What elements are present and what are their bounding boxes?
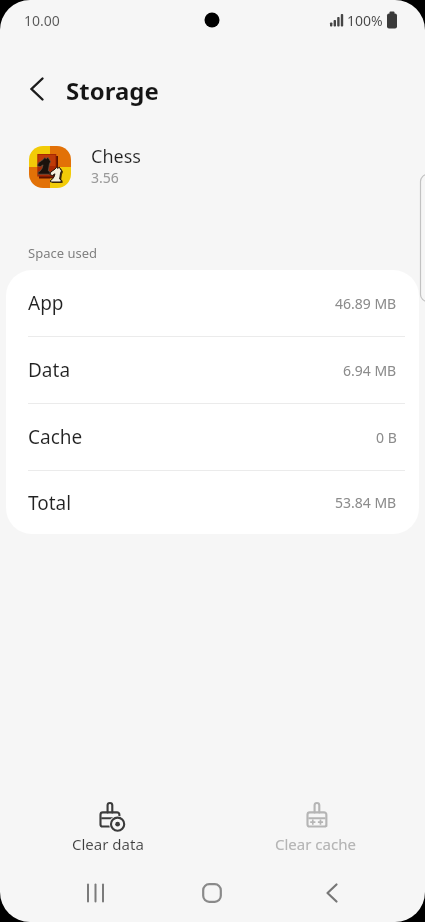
button[interactable]: App [6, 270, 419, 336]
staticText: App [28, 290, 64, 316]
button[interactable] [310, 872, 354, 914]
staticText: Cache [28, 424, 83, 450]
button[interactable]: Total [6, 471, 419, 534]
staticText: Data [28, 357, 71, 383]
button[interactable]: Data [6, 337, 419, 403]
staticText: 6.94 MB [343, 361, 397, 380]
staticText: Clear cache [275, 834, 356, 854]
button[interactable]: Cache [6, 404, 419, 470]
staticText: Storage [66, 74, 159, 107]
button[interactable] [191, 872, 233, 914]
staticText: Total [28, 490, 72, 516]
staticText: 3.56 [91, 168, 119, 187]
staticText: Chess [91, 144, 141, 169]
button[interactable] [20, 72, 56, 106]
staticText: Clear data [72, 834, 144, 854]
staticText: 0 B [376, 428, 397, 447]
button[interactable]: Clear data [58, 800, 158, 862]
staticText: 100% [347, 11, 383, 30]
staticText: 10.00 [24, 11, 60, 30]
button[interactable]: Clear cache [265, 800, 365, 862]
staticText: 46.89 MB [335, 294, 397, 313]
staticText: Space used [28, 244, 97, 262]
button[interactable] [74, 872, 118, 914]
staticText: 53.84 MB [335, 493, 397, 512]
